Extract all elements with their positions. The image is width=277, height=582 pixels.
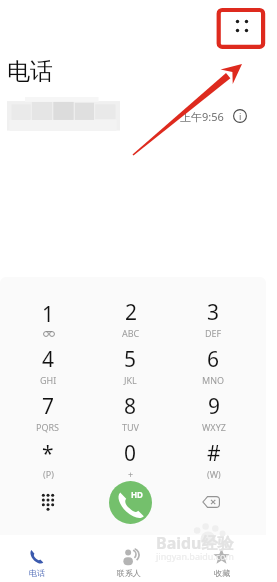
button[interactable]: Backspace xyxy=(193,481,235,523)
staticText: + xyxy=(128,468,134,480)
staticText: HD xyxy=(131,489,143,500)
staticText: 8 xyxy=(124,392,137,421)
staticText: 1 xyxy=(42,300,55,329)
staticText: i xyxy=(239,110,242,122)
button[interactable]: * xyxy=(7,436,89,483)
staticText: JKL xyxy=(124,374,137,386)
staticText: (W) xyxy=(207,468,221,480)
staticText: 电话 xyxy=(29,568,45,578)
button[interactable]: More options xyxy=(224,8,259,43)
staticText: 7 xyxy=(42,392,55,421)
staticText: 6 xyxy=(207,345,220,374)
button[interactable]: 3 xyxy=(172,294,255,342)
staticText: * xyxy=(42,439,54,468)
staticText: TUV xyxy=(122,421,139,433)
staticText: 电话 xyxy=(7,57,53,86)
button[interactable]: 1 xyxy=(7,294,89,342)
staticText: 5 xyxy=(124,345,137,374)
staticText: 2 xyxy=(125,298,138,327)
button[interactable]: 8 xyxy=(89,389,172,436)
button[interactable]: Call details xyxy=(229,105,251,127)
staticText: 9 xyxy=(208,392,221,421)
button[interactable]: 6 xyxy=(172,342,255,389)
button[interactable]: 2 xyxy=(89,294,172,342)
button[interactable]: 7 xyxy=(7,389,89,436)
staticText: # xyxy=(207,439,221,468)
staticText: 3 xyxy=(207,298,220,327)
staticText: jingyan.baidu.com xyxy=(156,550,234,562)
staticText: 4 xyxy=(42,345,55,374)
button[interactable]: Call xyxy=(109,481,152,524)
staticText: 上午9:56 xyxy=(180,109,224,124)
button[interactable]: 0 xyxy=(89,436,172,483)
staticText: DEF xyxy=(205,327,222,339)
button[interactable]: Hide keypad xyxy=(27,481,69,523)
staticText: 0 xyxy=(124,439,137,468)
staticText: PQRS xyxy=(36,421,60,433)
button[interactable]: # xyxy=(172,436,255,483)
staticText: WXYZ xyxy=(202,421,226,433)
staticText: MNO xyxy=(202,374,225,386)
staticText: (P) xyxy=(43,468,54,480)
staticText: GHI xyxy=(40,374,57,386)
staticText: Baidu经验 xyxy=(156,532,234,554)
staticText: 收藏 xyxy=(214,568,230,578)
button[interactable]: 电话 xyxy=(0,535,83,582)
staticText: 联系人 xyxy=(117,568,141,578)
button[interactable]: 联系人 xyxy=(83,535,175,582)
button[interactable]: 收藏 xyxy=(175,535,267,582)
button[interactable]: 5 xyxy=(89,342,172,389)
button[interactable]: 4 xyxy=(7,342,89,389)
button[interactable]: 9 xyxy=(172,389,255,436)
staticText: ABC xyxy=(122,327,140,339)
